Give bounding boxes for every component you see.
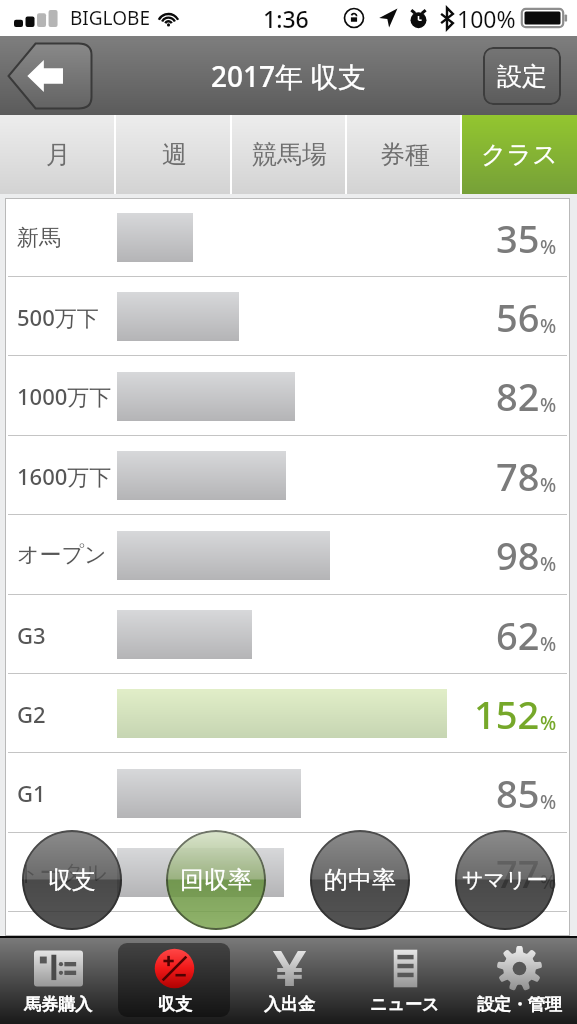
staticText: 78 (496, 450, 540, 502)
staticText: 77 (496, 847, 540, 899)
staticText: % (540, 472, 557, 498)
staticText: % (540, 631, 557, 657)
button[interactable]: 競馬場 (232, 115, 347, 194)
staticText: 1:36 (263, 3, 309, 34)
button[interactable]: 1600万下 (8, 436, 567, 515)
button[interactable]: 設定・管理 (464, 943, 575, 1017)
staticText: 500万下 (17, 302, 117, 332)
button[interactable]: 1000万下 (8, 356, 567, 436)
staticText: 回収率 (180, 865, 252, 895)
staticText: 85 (496, 767, 540, 819)
staticText: 1000万下 (17, 381, 117, 411)
staticText: % (540, 392, 557, 418)
staticText: 券種 (380, 139, 430, 170)
staticText: 収支 (48, 865, 96, 895)
button[interactable]: 入出金 (234, 943, 345, 1017)
staticText: % (540, 869, 557, 895)
staticText: 98 (496, 529, 540, 581)
button[interactable]: 回収率 (166, 830, 266, 930)
staticText: 競馬場 (252, 139, 327, 170)
staticText: % (540, 313, 557, 339)
button[interactable]: 500万下 (8, 277, 567, 356)
staticText: 馬券購入 (24, 994, 92, 1015)
button[interactable]: オープン (8, 515, 567, 595)
button[interactable]: 馬券購入 (2, 943, 114, 1017)
button[interactable]: サマリー (455, 830, 555, 930)
staticText: 入出金 (264, 994, 315, 1015)
button[interactable]: 的中率 (310, 830, 410, 930)
staticText: オープン (17, 541, 117, 569)
staticText: 35 (496, 212, 540, 264)
button[interactable]: 週 (116, 115, 232, 194)
staticText: 1600万下 (17, 461, 117, 491)
staticText: BIGLOBE (70, 5, 150, 31)
staticText: トータル (17, 859, 117, 887)
button[interactable]: 新馬 (8, 198, 567, 277)
button[interactable]: 戻る (6, 42, 93, 110)
staticText: 2017年 収支 (211, 57, 367, 95)
staticText: クラス (481, 139, 558, 170)
button[interactable]: トータル (8, 833, 567, 912)
staticText: G1 (17, 778, 117, 808)
staticText: % (540, 789, 557, 815)
staticText: 設定 (497, 61, 547, 92)
button[interactable]: 券種 (347, 115, 462, 194)
staticText: % (540, 234, 557, 260)
staticText: 82 (496, 370, 540, 422)
button[interactable]: ニュース (349, 943, 460, 1017)
staticText: G2 (17, 699, 117, 729)
button[interactable]: G3 (8, 595, 567, 674)
button[interactable]: 収支 (22, 830, 122, 930)
staticText: 56 (496, 291, 540, 343)
staticText: 100% (457, 3, 516, 34)
button[interactable]: クラス (462, 115, 577, 194)
button[interactable]: 収支 (118, 943, 230, 1017)
staticText: 的中率 (324, 865, 396, 895)
staticText: サマリー (462, 867, 548, 893)
button[interactable]: G2 (8, 674, 567, 753)
staticText: 152 (474, 688, 540, 740)
staticText: 新馬 (17, 224, 117, 252)
staticText: 62 (496, 609, 540, 661)
staticText: 月 (46, 139, 71, 170)
staticText: 収支 (158, 994, 192, 1015)
staticText: 設定・管理 (477, 994, 562, 1015)
button[interactable]: 月 (0, 115, 116, 194)
staticText: G3 (17, 620, 117, 650)
staticText: 週 (162, 139, 187, 170)
staticText: % (540, 710, 557, 736)
button[interactable]: 設定 (483, 47, 561, 105)
staticText: % (540, 551, 557, 577)
button[interactable]: G1 (8, 753, 567, 833)
staticText: ニュース (370, 994, 440, 1015)
